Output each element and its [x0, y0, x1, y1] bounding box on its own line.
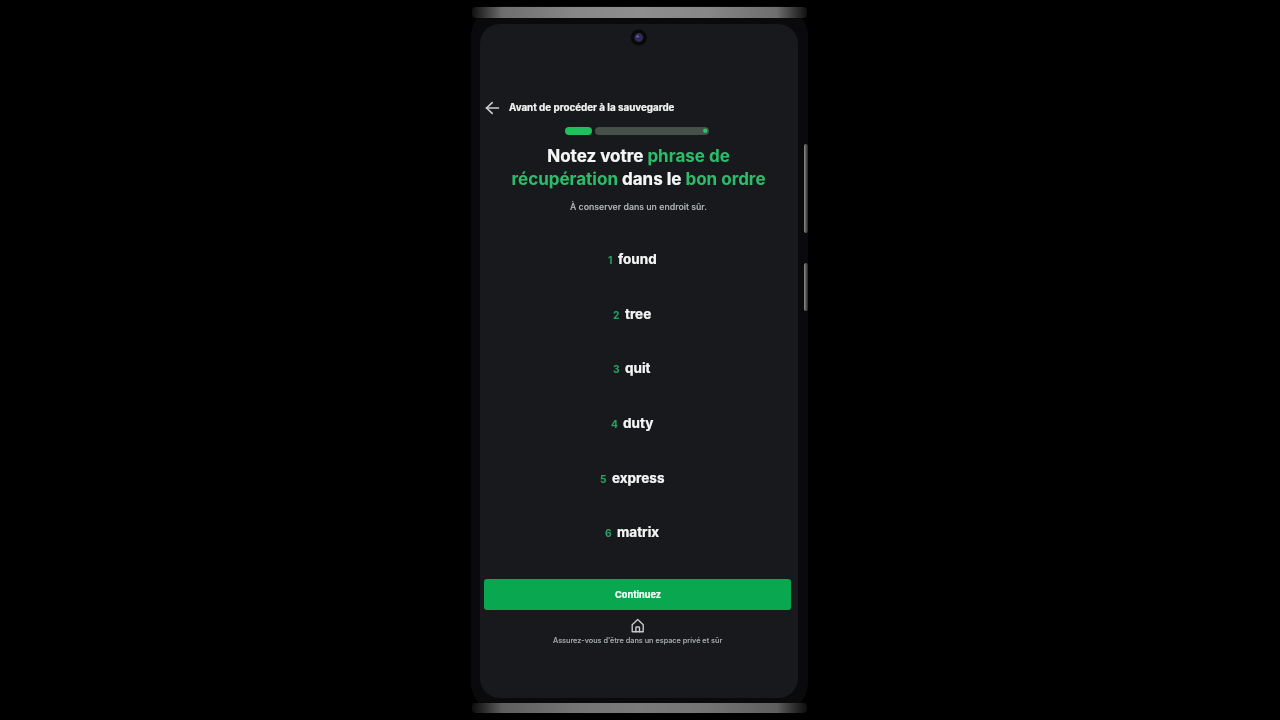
staticText: matrix [617, 524, 660, 540]
staticText: Continuez [615, 589, 661, 600]
staticText: À conserver dans un endroit sûr. [570, 201, 707, 212]
button[interactable]: Continuez [484, 579, 791, 610]
staticText: Notez votre phrase de récupération dans … [511, 146, 766, 190]
staticText: 1 [608, 254, 613, 266]
staticText: duty [623, 415, 654, 431]
staticText: 3 [613, 363, 620, 375]
staticText: quit [625, 360, 651, 376]
staticText: found [618, 251, 657, 267]
staticText: 5 [600, 473, 607, 485]
staticText: Assurez-vous d'être dans un espace privé… [553, 636, 723, 645]
staticText: 2 [613, 309, 620, 321]
button[interactable] [481, 97, 503, 119]
staticText: express [612, 470, 665, 486]
staticText: 6 [605, 527, 612, 539]
staticText: Avant de procéder à la sauvegarde [509, 102, 675, 114]
staticText: 4 [611, 418, 618, 430]
staticText: tree [625, 306, 652, 322]
